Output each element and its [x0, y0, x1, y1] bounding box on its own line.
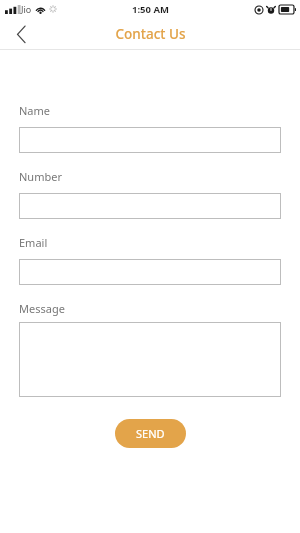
button[interactable]: Email input — [19, 259, 281, 285]
button[interactable]: Name input — [19, 127, 281, 153]
staticText: Contact Us — [115, 25, 186, 43]
staticText: Name — [19, 103, 51, 118]
staticText: Jio — [21, 3, 32, 15]
button[interactable]: Number input — [19, 193, 281, 219]
button[interactable]: Back — [0, 18, 42, 49]
staticText: 1:50 AM — [132, 3, 169, 16]
button[interactable]: Message input — [19, 322, 281, 397]
staticText: SEND — [136, 426, 165, 441]
staticText: Message — [19, 301, 65, 316]
staticText: Number — [19, 169, 62, 184]
staticText: Email — [19, 235, 48, 250]
button[interactable]: SEND — [115, 419, 186, 448]
